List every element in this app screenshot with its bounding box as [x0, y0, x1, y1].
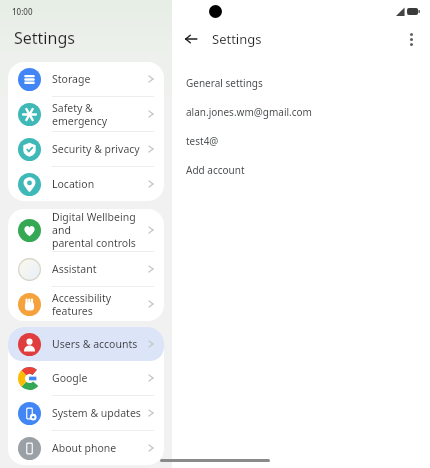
button[interactable]: Storage — [8, 62, 164, 96]
staticText: Digital Wellbeing and parental controls — [52, 210, 146, 250]
button[interactable]: About phone — [8, 431, 164, 465]
button[interactable]: Users & accounts — [8, 327, 164, 361]
staticText: System & updates — [52, 406, 146, 420]
button[interactable]: Digital Wellbeing and parental controls — [8, 209, 164, 251]
staticText: Assistant — [52, 262, 146, 276]
button[interactable]: alan.jones.wm@gmail.com — [172, 97, 430, 126]
staticText: test4@ — [186, 134, 219, 148]
button[interactable]: Location — [8, 167, 164, 201]
staticText: Security & privacy — [52, 142, 146, 156]
button[interactable]: Safety & emergency — [8, 97, 164, 131]
button[interactable]: System & updates — [8, 396, 164, 430]
button[interactable]: Security & privacy — [8, 132, 164, 166]
staticText: About phone — [52, 441, 146, 455]
button[interactable]: General settings — [172, 68, 430, 97]
staticText: Accessibility features — [52, 291, 146, 318]
staticText: Location — [52, 177, 146, 191]
button[interactable]: Add account — [172, 155, 430, 184]
button[interactable]: More options — [398, 26, 424, 52]
button[interactable]: Google — [8, 361, 164, 395]
button[interactable]: test4@ — [172, 126, 430, 155]
staticText: Settings — [14, 27, 75, 49]
staticText: Settings — [212, 30, 262, 48]
button[interactable]: Back — [178, 26, 204, 52]
staticText: alan.jones.wm@gmail.com — [186, 105, 312, 119]
staticText: Google — [52, 371, 146, 385]
button[interactable]: Assistant — [8, 252, 164, 286]
staticText: 10:00 — [12, 6, 33, 17]
button[interactable]: Accessibility features — [8, 287, 164, 321]
staticText: General settings — [186, 76, 263, 90]
staticText: Users & accounts — [52, 337, 146, 351]
staticText: Safety & emergency — [52, 101, 146, 128]
staticText: Storage — [52, 72, 146, 86]
staticText: Add account — [186, 163, 245, 177]
